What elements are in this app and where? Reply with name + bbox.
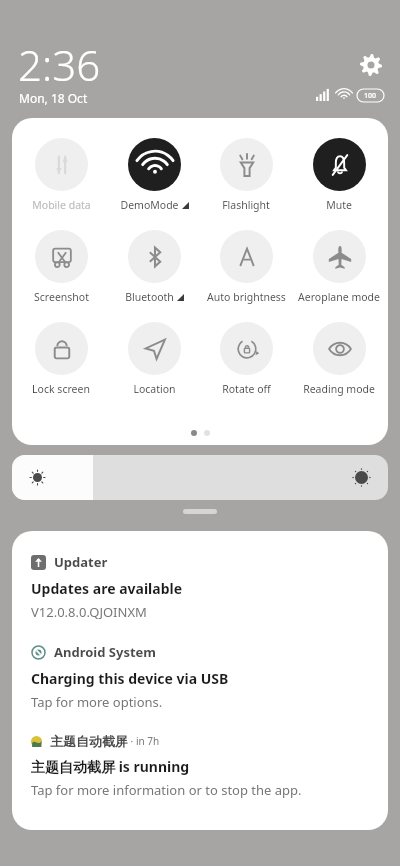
staticText: Auto brightness [207, 290, 286, 304]
staticText: · in 7h [128, 734, 160, 748]
button[interactable]: Aeroplane mode [295, 230, 383, 304]
staticText: Updates are available [31, 579, 183, 598]
staticText: Reading mode [303, 382, 375, 396]
button[interactable]: Bluetooth [110, 230, 198, 304]
button[interactable]: Updater [12, 531, 388, 621]
button[interactable]: Location [110, 322, 198, 396]
staticText: Rotate off [222, 382, 271, 396]
staticText: 主题自动截屏 is running [31, 757, 190, 776]
button[interactable]: Flashlight [202, 138, 290, 212]
button[interactable]: DemoMode [110, 138, 198, 212]
button[interactable] [12, 455, 388, 500]
staticText: Screenshot [34, 290, 89, 304]
staticText: Mobile data [32, 198, 91, 212]
staticText: Charging this device via USB [31, 669, 229, 688]
staticText: 100 [364, 91, 377, 101]
staticText: Tap for more options. [31, 693, 163, 711]
staticText: Flashlight [222, 198, 270, 212]
button[interactable]: Mobile data [17, 138, 105, 212]
staticText: 2:36 [18, 36, 101, 93]
button[interactable]: Auto brightness [202, 230, 290, 304]
staticText: Bluetooth [125, 290, 174, 304]
staticText: 主题自动截屏 [50, 733, 128, 749]
staticText: Android System [54, 643, 157, 661]
staticText: DemoMode [120, 198, 179, 212]
button[interactable]: Rotate off [202, 322, 290, 396]
staticText: Tap for more information or to stop the … [31, 781, 302, 799]
staticText: Mute [326, 198, 352, 212]
button[interactable]: Screenshot [17, 230, 105, 304]
button[interactable]: 主题自动截屏 [12, 711, 388, 799]
staticText: Updater [54, 553, 108, 571]
button[interactable]: Android System [12, 621, 388, 711]
button[interactable]: Mute [295, 138, 383, 212]
staticText: V12.0.8.0.QJOINXM [31, 603, 147, 621]
staticText: Location [133, 382, 176, 396]
button[interactable]: Settings [356, 50, 386, 80]
button[interactable]: Reading mode [295, 322, 383, 396]
staticText: Lock screen [32, 382, 90, 396]
staticText: Mon, 18 Oct [19, 90, 88, 106]
staticText: Aeroplane mode [298, 290, 380, 304]
button[interactable]: Lock screen [17, 322, 105, 396]
